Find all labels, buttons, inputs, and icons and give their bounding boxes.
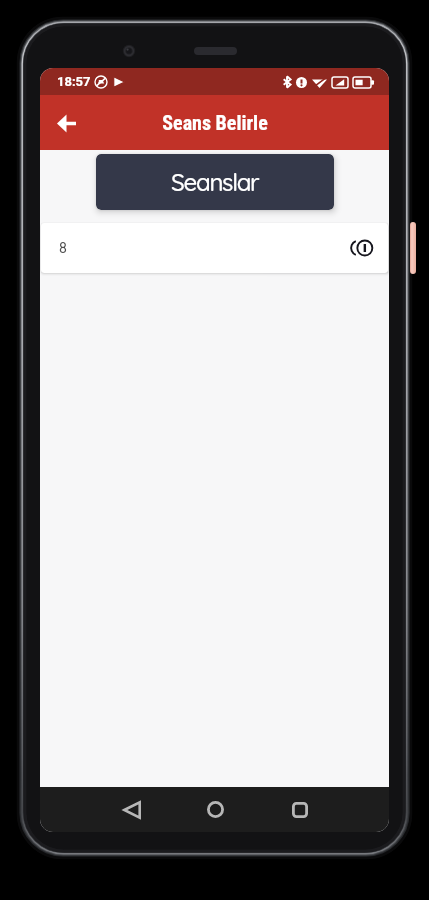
staticText: Seans Belirle [162,111,268,134]
staticText: 18:57 [57,74,91,89]
button[interactable]: 8 [41,223,388,273]
button[interactable]: Recents [277,787,322,832]
staticText: 8 [59,240,67,256]
button[interactable]: Vibration [348,235,374,261]
button[interactable]: Back [109,787,154,832]
button[interactable]: Home [193,787,238,832]
button[interactable]: Seanslar [96,154,334,210]
staticText: Seanslar [171,167,259,197]
button[interactable]: Back [48,105,84,141]
